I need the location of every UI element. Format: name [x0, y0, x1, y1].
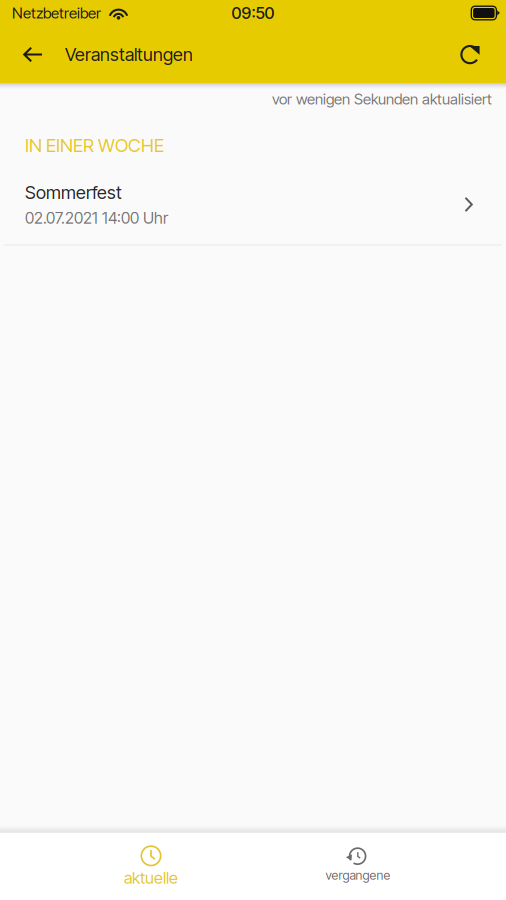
- staticText: 09:50: [231, 3, 274, 23]
- staticText: Sommerfest: [25, 181, 122, 203]
- button[interactable]: Sommerfest: [0, 156, 506, 244]
- staticText: IN EINER WOCHE: [25, 134, 164, 156]
- staticText: vor wenigen Sekunden aktualisiert: [272, 90, 492, 108]
- button[interactable]: vergangene: [298, 841, 418, 892]
- button[interactable]: Back: [12, 32, 54, 76]
- staticText: vergangene: [325, 868, 390, 883]
- button[interactable]: Refresh: [450, 32, 492, 76]
- button[interactable]: aktuelle: [91, 836, 211, 897]
- staticText: 02.07.2021 14:00 Uhr: [25, 208, 168, 227]
- staticText: Netzbetreiber: [12, 4, 101, 22]
- staticText: aktuelle: [124, 868, 178, 888]
- staticText: Veranstaltungen: [65, 44, 193, 65]
